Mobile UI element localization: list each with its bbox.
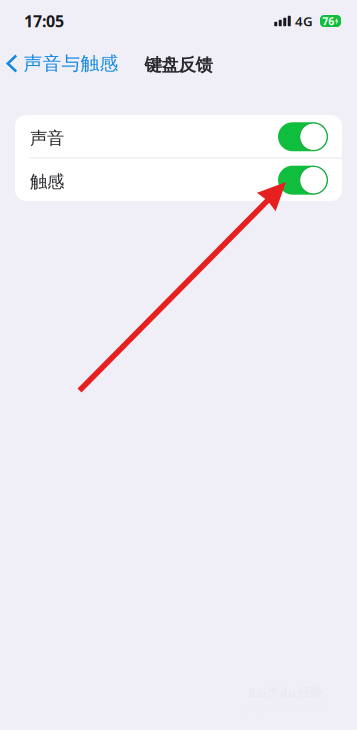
staticText: 触感 xyxy=(30,171,64,192)
staticText: 键盘反馈 xyxy=(144,54,212,76)
staticText: 声音与触感 xyxy=(23,52,118,75)
staticText: 4G xyxy=(295,12,313,30)
button[interactable]: 触感 开关 xyxy=(278,165,328,194)
staticText: 17:05 xyxy=(24,10,64,32)
staticText: 声音 xyxy=(30,128,64,149)
button[interactable]: 声音 开关 xyxy=(278,122,328,151)
button[interactable]: 返回 声音与触感 xyxy=(1,43,123,83)
staticText: 76 xyxy=(322,14,334,28)
button[interactable]: 声音 xyxy=(15,115,342,157)
button[interactable]: 触感 xyxy=(15,158,342,201)
